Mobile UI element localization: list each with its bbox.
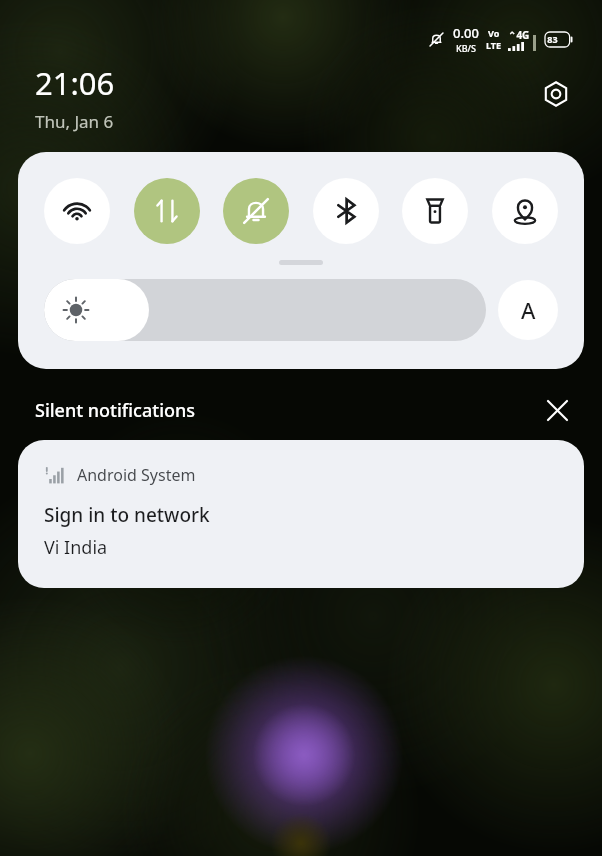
button[interactable]: Auto brightness xyxy=(498,280,558,340)
button[interactable]: Brightness xyxy=(44,279,486,341)
staticText: Android System xyxy=(77,464,196,486)
staticText: Sign in to network xyxy=(44,502,210,528)
staticText: Silent notifications xyxy=(35,398,196,423)
staticText: Vo xyxy=(488,27,500,39)
button[interactable]: Bluetooth xyxy=(313,178,379,244)
staticText: 0.00 xyxy=(453,24,479,42)
button[interactable]: Do not disturb xyxy=(223,178,289,244)
staticText: Vi India xyxy=(44,535,108,560)
staticText: A xyxy=(521,295,536,325)
staticText: ⌃4G xyxy=(508,28,530,42)
button[interactable]: Wi-Fi xyxy=(44,178,110,244)
button[interactable]: Android System xyxy=(18,440,584,588)
button[interactable]: Clear all notifications xyxy=(540,393,574,427)
staticText: LTE xyxy=(486,39,502,51)
staticText: 21:06 xyxy=(35,62,115,104)
button[interactable]: Settings xyxy=(538,76,574,112)
button[interactable]: Flashlight xyxy=(402,178,468,244)
button[interactable]: Mobile data xyxy=(134,178,200,244)
button[interactable]: Location xyxy=(492,178,558,244)
staticText: KB/S xyxy=(456,42,476,54)
staticText: 83 xyxy=(547,33,558,45)
staticText: Thu, Jan 6 xyxy=(35,110,114,133)
